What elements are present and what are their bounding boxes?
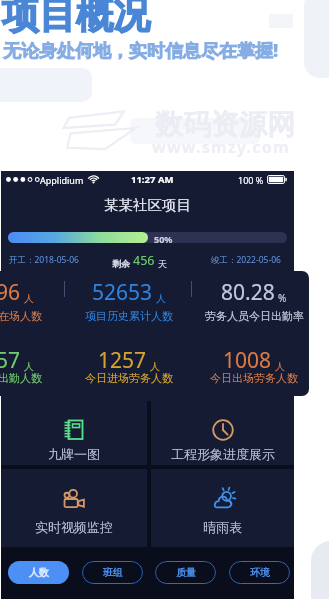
staticText: 80.28 [221,278,275,307]
staticText: www.smzy.com [152,136,290,158]
staticText: 人 [24,292,34,305]
staticText: 班组 [103,566,123,579]
staticText: 九牌一图 [48,446,100,462]
staticText: 环境 [250,566,270,579]
staticText: 晴雨表 [203,519,242,535]
staticText: 11:27 AM [131,173,174,186]
staticText: 天 [158,258,167,269]
staticText: 人 [24,360,34,373]
staticText: 无论身处何地，实时信息尽在掌握! [3,38,279,63]
staticText: 396 [0,278,21,307]
staticText: 工程形象进度展示 [171,446,275,462]
staticText: 100 % [238,174,264,186]
staticText: 劳务人员今日出勤率 [205,309,304,323]
staticText: 人数 [29,566,49,579]
button[interactable]: 班组 [82,561,143,584]
staticText: Applidium [40,174,84,186]
button[interactable]: 环境 [229,561,290,584]
other: 九牌一图 [63,419,85,441]
button[interactable]: 质量 [155,561,216,584]
staticText: 456 [133,252,155,269]
staticText: 某某社区项目 [104,196,191,213]
button[interactable]: 九牌一图 [1,401,147,465]
other: 工程形象进度展示 [212,419,234,441]
staticText: 平均出勤人数 [0,371,42,385]
button[interactable]: 实时视频监控 [1,469,147,547]
button[interactable]: 工程形象进度展示 [151,401,294,465]
staticText: 1008 [223,346,272,375]
staticText: 实时在场人数 [0,309,42,323]
other: 实时视频监控 [63,488,85,510]
staticText: 项目概况 [2,0,150,39]
staticText: 项目历史累计人数 [85,309,173,323]
staticText: 开工：2018-05-06 [9,254,79,266]
staticText: 竣工：2022-05-06 [211,254,281,266]
staticText: 今日进场劳务人数 [85,371,173,385]
staticText: 今日出场劳务人数 [210,371,298,385]
button[interactable]: 晴雨表 [151,469,294,547]
staticText: 50% [154,233,173,244]
staticText: 1257 [98,346,147,375]
staticText: 实时视频监控 [35,519,113,535]
staticText: 质量 [176,566,196,579]
staticText: 257 [0,346,21,375]
staticText: 剩余 [112,258,130,269]
button[interactable]: 人数 [8,561,69,584]
staticText: 人 [150,360,160,373]
staticText: 数码资源网 [155,107,295,142]
staticText: 人 [275,360,285,373]
staticText: 人 [156,292,166,305]
other: 晴雨表 [212,488,234,510]
staticText: % [278,291,287,305]
staticText: 52653 [92,278,153,307]
